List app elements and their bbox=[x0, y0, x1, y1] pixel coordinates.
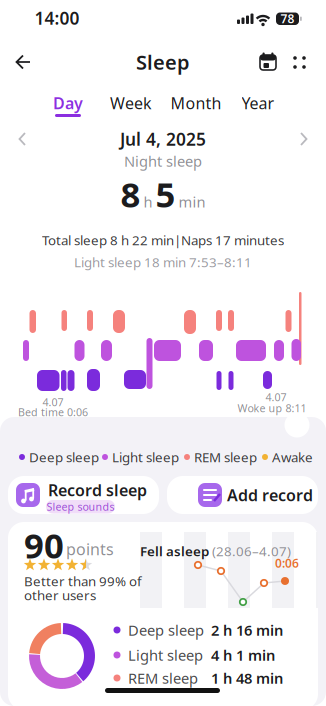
staticText: 1 h 48 min bbox=[211, 668, 283, 688]
staticText: Year bbox=[241, 92, 274, 114]
staticText: Add record bbox=[227, 484, 313, 506]
staticText: Week bbox=[110, 92, 152, 114]
staticText: Fell asleep bbox=[140, 542, 209, 560]
staticText: Woke up 8:11 bbox=[237, 401, 306, 415]
staticText: 14:00 bbox=[34, 6, 79, 29]
staticText: Month bbox=[170, 92, 221, 114]
button[interactable] bbox=[286, 49, 312, 75]
staticText: 4 h 1 min bbox=[211, 645, 275, 665]
staticText: 8 bbox=[120, 171, 140, 217]
staticText: Light sleep bbox=[112, 448, 179, 466]
button[interactable] bbox=[283, 411, 311, 439]
button[interactable]: Week bbox=[101, 90, 161, 116]
button[interactable]: Year bbox=[230, 90, 286, 116]
button[interactable]: Day bbox=[46, 88, 90, 120]
button[interactable] bbox=[10, 127, 34, 151]
button[interactable]: 90 bbox=[8, 522, 318, 706]
button[interactable]: Month bbox=[164, 90, 228, 116]
staticText: points bbox=[66, 538, 114, 560]
staticText: 5 bbox=[155, 171, 175, 217]
staticText: 2 h 16 min bbox=[211, 620, 283, 640]
staticText: (28.06–4.07) bbox=[212, 542, 291, 560]
button[interactable] bbox=[3, 40, 43, 84]
staticText: REM sleep bbox=[194, 448, 257, 466]
staticText: other users bbox=[24, 586, 96, 604]
button[interactable] bbox=[253, 47, 283, 77]
staticText: Awake bbox=[272, 448, 313, 466]
staticText: Total sleep 8 h 22 min|Naps 17 minutes bbox=[42, 231, 284, 249]
staticText: Deep sleep bbox=[128, 620, 204, 640]
staticText: 4.07 bbox=[42, 395, 63, 409]
staticText: 4.07 bbox=[265, 390, 286, 404]
button[interactable]: Add record bbox=[167, 476, 318, 514]
staticText: h bbox=[143, 192, 152, 211]
staticText: Day bbox=[53, 92, 83, 114]
button[interactable]: Record sleep bbox=[8, 476, 159, 514]
staticText: Light sleep bbox=[128, 645, 203, 665]
staticText: REM sleep bbox=[128, 668, 198, 688]
staticText: 78 bbox=[280, 11, 294, 27]
staticText: min bbox=[178, 192, 205, 211]
staticText: Sleep bbox=[136, 49, 190, 75]
staticText: Better than 99% of bbox=[24, 572, 142, 590]
staticText: Bed time 0:06 bbox=[18, 405, 88, 419]
staticText: Night sleep bbox=[124, 151, 202, 171]
staticText: Light sleep 18 min 7:53–8:11 bbox=[74, 253, 252, 271]
staticText: Deep sleep bbox=[29, 448, 99, 466]
staticText: Sleep sounds bbox=[46, 499, 114, 514]
staticText: Jul 4, 2025 bbox=[120, 127, 206, 150]
staticText: 0:06 bbox=[275, 555, 299, 571]
staticText: Record sleep bbox=[48, 479, 147, 501]
staticText: 90 bbox=[24, 522, 64, 568]
button[interactable] bbox=[292, 127, 316, 151]
